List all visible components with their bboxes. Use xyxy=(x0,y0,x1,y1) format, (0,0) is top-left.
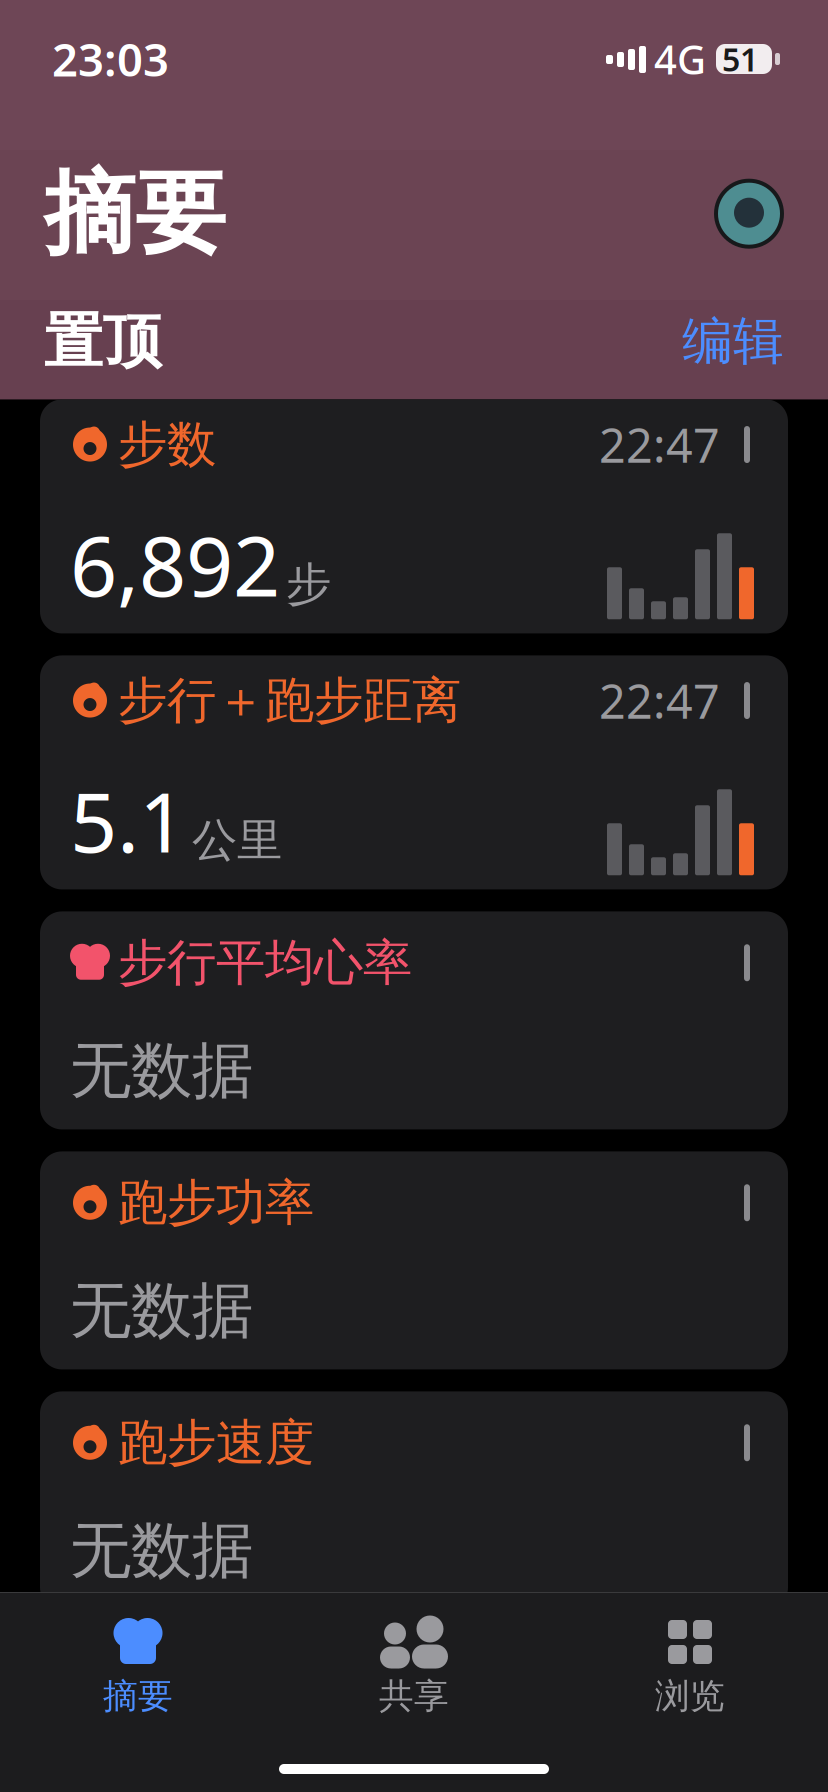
staticText: 22:47 xyxy=(599,413,720,475)
button[interactable]: 步数 xyxy=(40,399,788,633)
staticText: 23:03 xyxy=(52,29,169,89)
staticText: 步 xyxy=(286,557,331,612)
staticText: 无数据 xyxy=(70,1513,253,1588)
staticText: 摘要 xyxy=(44,158,226,269)
button[interactable]: 步行＋跑步距离 xyxy=(40,655,788,889)
staticText: 跑步速度 xyxy=(118,1412,314,1473)
staticText: 6,892 xyxy=(70,509,280,619)
staticText: 置顶 xyxy=(44,305,162,377)
staticText: 共享 xyxy=(379,1675,449,1718)
button[interactable]: 摘要 xyxy=(0,1611,276,1724)
button[interactable]: 编辑 xyxy=(682,310,784,372)
staticText: 摘要 xyxy=(103,1675,173,1718)
button[interactable]: 共享 xyxy=(276,1611,552,1724)
button[interactable]: 浏览 xyxy=(552,1611,828,1724)
staticText: 浏览 xyxy=(655,1675,725,1718)
staticText: 无数据 xyxy=(70,1033,253,1108)
staticText: 4G xyxy=(654,32,706,85)
staticText: 步行平均心率 xyxy=(118,932,412,993)
staticText: 无数据 xyxy=(70,1273,253,1348)
button[interactable]: 步行平均心率 xyxy=(40,911,788,1129)
staticText: 公里 xyxy=(192,813,282,868)
button[interactable]: 跑步速度 xyxy=(40,1391,788,1609)
staticText: 22:47 xyxy=(599,669,720,731)
staticText: 跑步功率 xyxy=(118,1172,314,1233)
button[interactable]: 跑步功率 xyxy=(40,1151,788,1369)
staticText: 编辑 xyxy=(682,310,784,372)
staticText: 5.1 xyxy=(70,765,186,875)
button[interactable]: 个人资料 xyxy=(714,179,784,249)
staticText: 步数 xyxy=(118,414,216,475)
staticText: 51 xyxy=(722,38,758,80)
staticText: 步行＋跑步距离 xyxy=(118,670,461,731)
